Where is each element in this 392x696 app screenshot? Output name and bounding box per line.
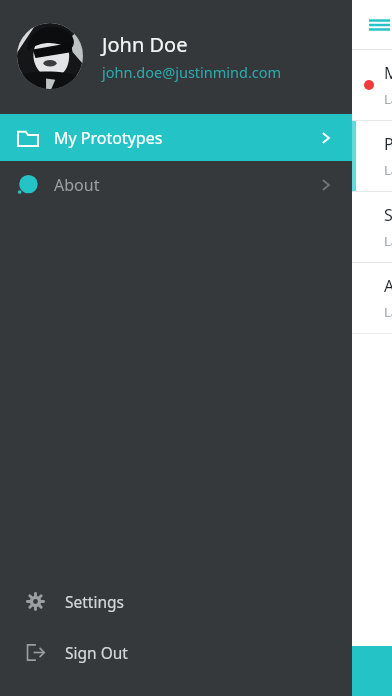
staticText: Settings xyxy=(65,591,124,612)
staticText: Last modified 2 days ago xyxy=(384,161,392,179)
staticText: Mobile app xyxy=(384,62,392,84)
staticText: Sign Out xyxy=(65,642,128,663)
button[interactable]: Folder xyxy=(0,114,352,161)
other: Folder xyxy=(17,127,39,149)
button[interactable]: Phone prototype xyxy=(352,121,392,191)
button[interactable]: Open navigation drawer xyxy=(364,10,392,40)
other: About xyxy=(17,174,39,196)
staticText: Search results xyxy=(384,204,392,226)
button[interactable]: John Doe xyxy=(0,0,352,112)
button[interactable]: Admin panel xyxy=(352,263,392,333)
staticText: Last modified 2 days ago xyxy=(384,303,392,321)
staticText: john.doe@justinmind.com xyxy=(102,62,282,82)
other: Sign Out xyxy=(26,643,45,662)
button[interactable]: Settings xyxy=(0,576,352,627)
button[interactable]: Mobile app xyxy=(352,50,392,120)
button[interactable]: Search results xyxy=(352,192,392,262)
staticText: About xyxy=(54,174,318,196)
button[interactable]: Sign Out xyxy=(0,627,352,678)
button[interactable]: About xyxy=(0,161,352,208)
other: Open navigation drawer xyxy=(369,17,390,33)
other: Settings xyxy=(26,592,45,611)
staticText: Last modified 2 days ago xyxy=(384,90,392,108)
staticText: My Prototypes xyxy=(54,127,318,149)
staticText: Admin panel xyxy=(384,275,392,297)
staticText: John Doe xyxy=(102,31,188,58)
staticText: Phone prototype xyxy=(384,133,392,155)
staticText: Last modified 2 days ago xyxy=(384,232,392,250)
